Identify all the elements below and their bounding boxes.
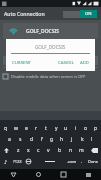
staticText: Done	[88, 159, 99, 164]
staticText: .	[81, 158, 83, 165]
button[interactable]: Home	[26, 169, 51, 180]
button[interactable]: CANCEL	[57, 59, 75, 67]
button[interactable]: .com	[66, 156, 78, 167]
button[interactable]: r	[31, 123, 41, 134]
button[interactable]: g	[47, 134, 57, 145]
staticText: a	[8, 136, 11, 143]
button[interactable]: q	[0, 123, 11, 134]
button[interactable]: Space	[33, 156, 66, 167]
button[interactable]: .	[78, 156, 86, 167]
button[interactable]: a	[4, 134, 15, 145]
staticText: ?123	[13, 159, 22, 164]
button[interactable]: s	[15, 134, 26, 145]
staticText: i	[75, 125, 77, 132]
button[interactable]: Back	[0, 169, 26, 180]
button[interactable]: w	[11, 123, 21, 134]
button[interactable]: v	[43, 145, 54, 156]
staticText: o	[84, 125, 88, 132]
staticText: GOLF_DOCSIS	[35, 44, 66, 50]
staticText: Auto Connection	[4, 10, 45, 17]
button[interactable]: b	[54, 145, 65, 156]
staticText: ♪	[4, 159, 8, 165]
button[interactable]: n	[65, 145, 76, 156]
button[interactable]: GOLF_DOCSIS	[3, 23, 98, 39]
staticText: r	[35, 125, 38, 132]
button[interactable]: ADD WI-FI SSID	[3, 56, 98, 65]
button[interactable]: Done	[86, 156, 101, 167]
button[interactable]: ADD	[79, 59, 90, 67]
staticText: h	[60, 136, 64, 143]
button[interactable]: x	[23, 145, 33, 156]
staticText: x	[27, 147, 30, 154]
staticText: l	[91, 136, 93, 143]
button[interactable]: z	[13, 145, 23, 156]
staticText: d	[30, 136, 34, 143]
staticText: j	[71, 136, 73, 143]
button[interactable]: l	[87, 134, 97, 145]
staticText: b	[58, 147, 62, 154]
staticText: ADD	[80, 60, 89, 66]
button[interactable]: Disable mobile data when screen is OFF	[3, 74, 98, 79]
button[interactable]: Recent apps	[51, 169, 76, 180]
button[interactable]: ?123	[11, 156, 23, 167]
staticText: z	[17, 147, 20, 154]
staticText: ON	[85, 11, 92, 17]
staticText: s	[19, 136, 22, 143]
button[interactable]: CURRENT	[11, 59, 32, 67]
staticText: w	[14, 125, 18, 132]
button[interactable]: e	[21, 123, 31, 134]
button[interactable]: i	[71, 123, 81, 134]
button[interactable]: c	[33, 145, 43, 156]
button[interactable]: Auto connection toggle	[63, 10, 97, 18]
staticText: CURRENT	[12, 60, 31, 66]
button[interactable]: Stickers	[0, 156, 11, 167]
staticText: Disable mobile data when screen is OFF	[11, 74, 86, 79]
button[interactable]: k	[77, 134, 87, 145]
button[interactable]: m	[76, 145, 87, 156]
button[interactable]: u	[61, 123, 71, 134]
staticText: n	[69, 147, 73, 154]
button[interactable]: j	[67, 134, 77, 145]
staticText: ADD WI-FI SSID	[35, 58, 66, 64]
staticText: y	[55, 125, 58, 132]
staticText: p	[94, 125, 98, 132]
staticText: q	[4, 125, 8, 132]
button[interactable]: y	[51, 123, 61, 134]
staticText: c	[37, 147, 40, 154]
staticText: t	[45, 125, 47, 132]
button[interactable]: t	[41, 123, 51, 134]
button[interactable]: Shift	[0, 145, 13, 156]
staticText: u	[64, 125, 68, 132]
button[interactable]: d	[26, 134, 37, 145]
staticText: m	[79, 147, 84, 154]
staticText: k	[81, 136, 84, 143]
button[interactable]: p	[91, 123, 101, 134]
button[interactable]: Backspace	[87, 145, 101, 156]
staticText: CANCEL	[58, 60, 74, 66]
button[interactable]: o	[81, 123, 91, 134]
staticText: e	[25, 125, 28, 132]
staticText: GOLF_DOCSIS	[26, 28, 60, 35]
button[interactable]: Language	[23, 156, 33, 167]
button[interactable]: f	[37, 134, 47, 145]
staticText: g	[50, 136, 54, 143]
staticText: v	[47, 147, 50, 154]
button[interactable]: Switch keyboard	[76, 169, 101, 180]
button[interactable]: h	[57, 134, 67, 145]
staticText: f	[41, 136, 43, 143]
staticText: .com	[67, 159, 77, 164]
